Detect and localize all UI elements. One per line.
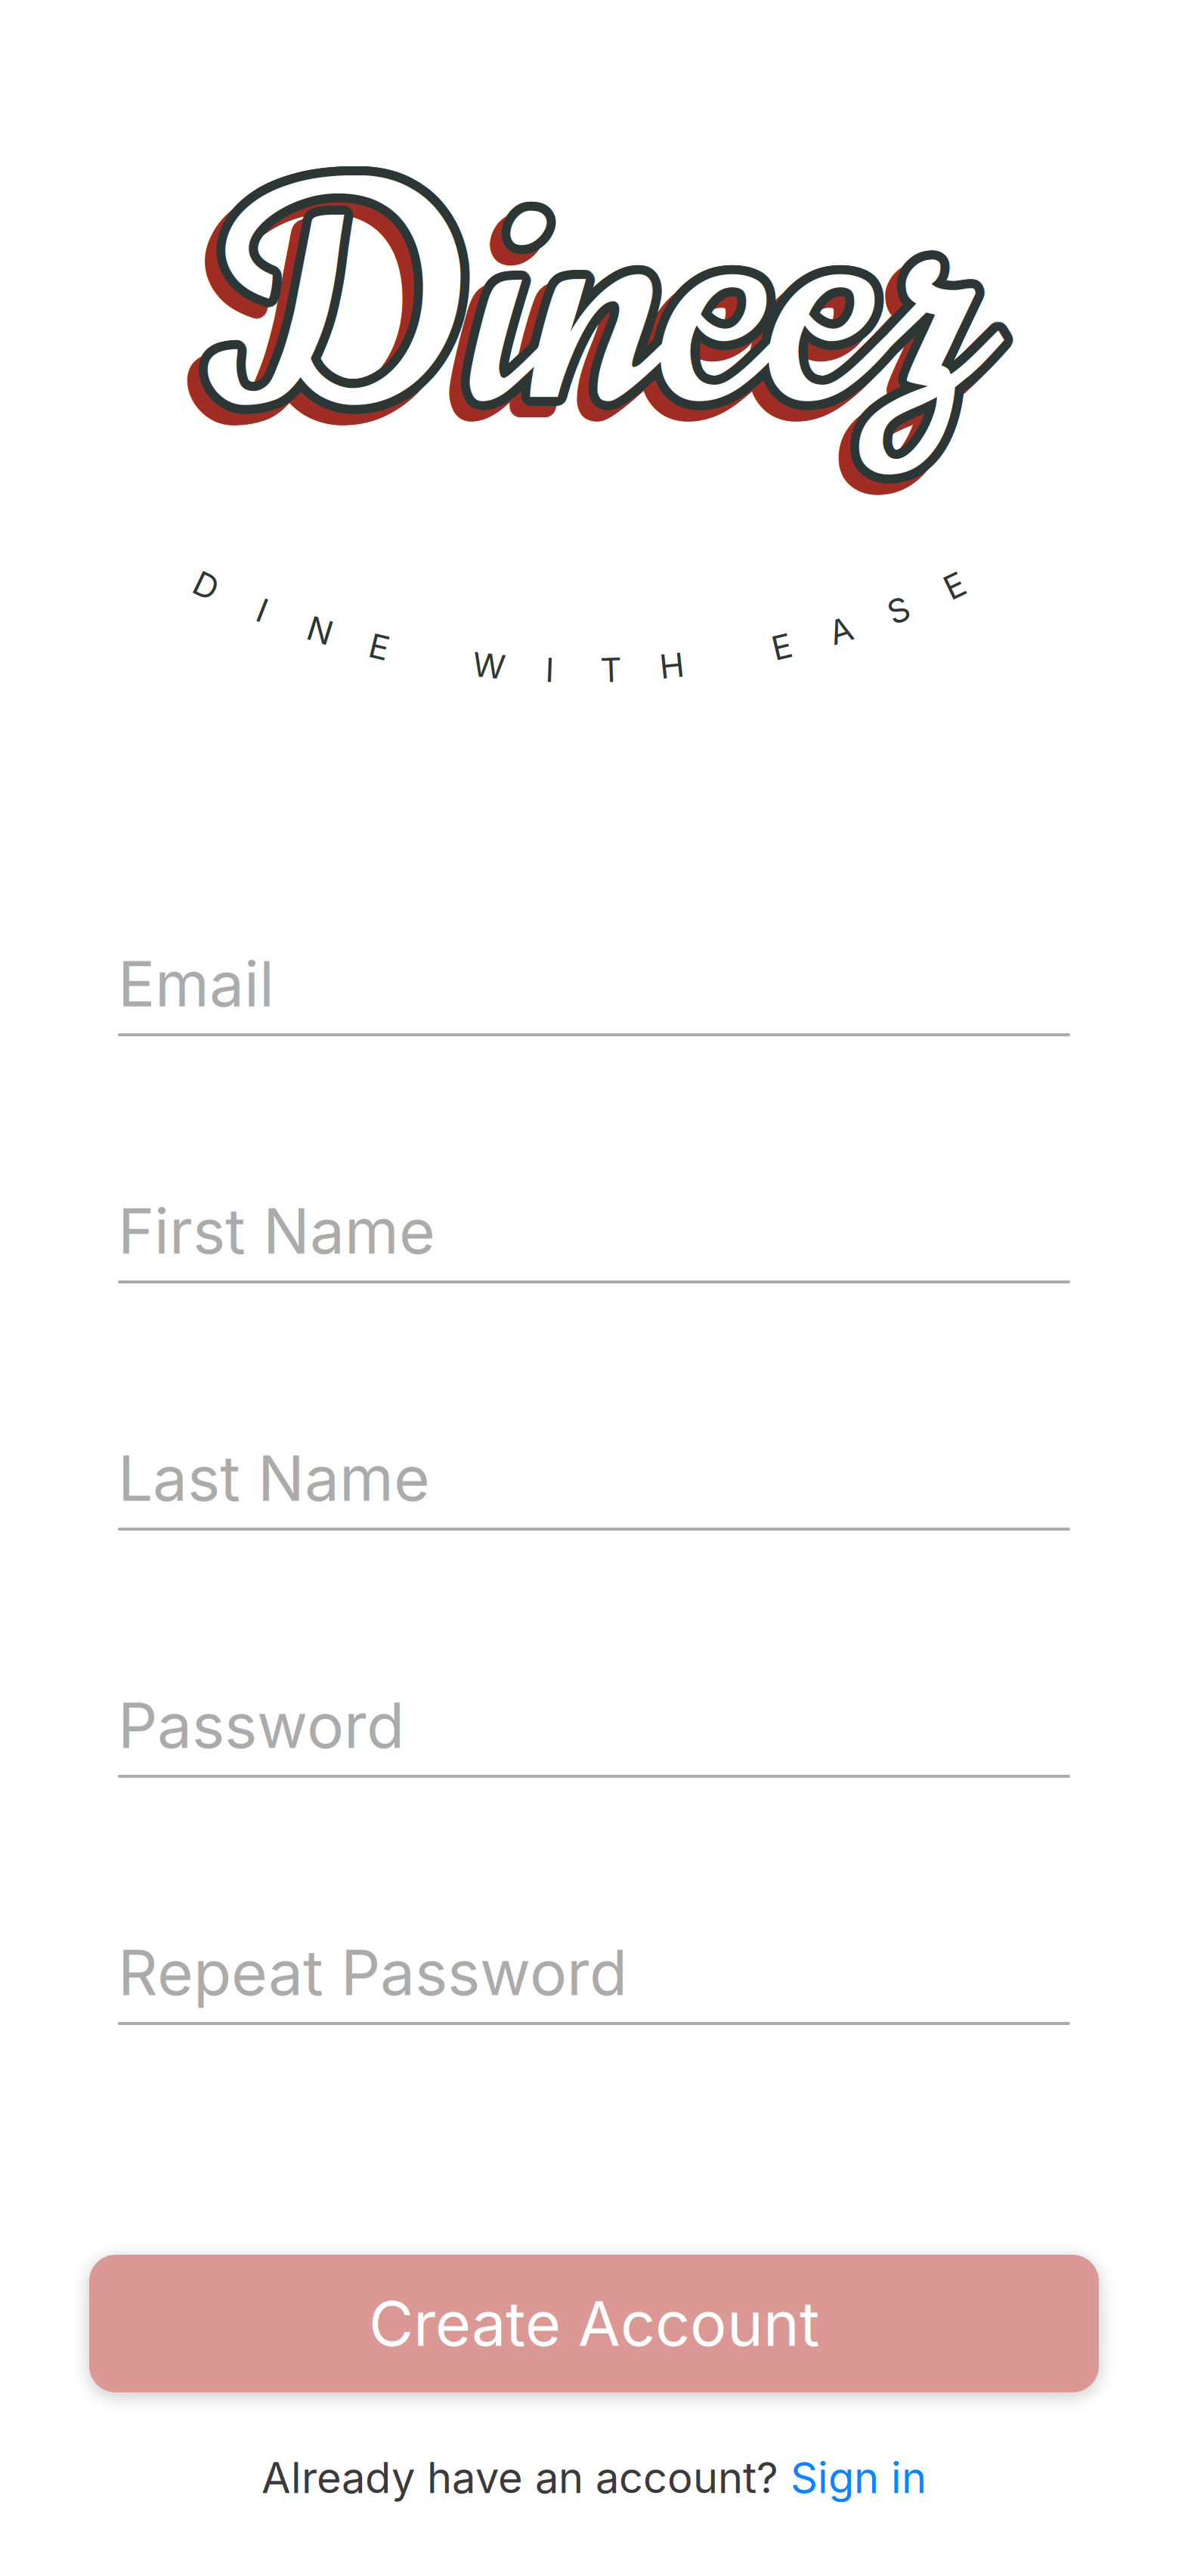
staticText: Dineez: [199, 106, 963, 527]
button[interactable]: Create Account: [89, 2255, 1099, 2392]
staticText: Dineez: [209, 95, 974, 516]
staticText: Dineez: [201, 104, 966, 525]
staticText: Dineez: [204, 103, 969, 523]
staticText: Dineez: [207, 109, 972, 529]
staticText: Dineez: [201, 101, 966, 522]
staticText: Dineez: [198, 103, 962, 523]
staticText: Dineez: [203, 99, 968, 520]
staticText: A: [829, 610, 852, 651]
staticText: Dineez: [224, 91, 989, 512]
staticText: W: [472, 646, 505, 686]
staticText: Dineez: [212, 99, 977, 519]
button[interactable]: Last Name: [118, 1441, 1070, 1531]
staticText: Dineez: [204, 103, 969, 523]
staticText: Dineez: [212, 106, 977, 527]
staticText: Dineez: [204, 103, 969, 523]
staticText: Dineez: [208, 98, 973, 518]
staticText: Dineez: [201, 101, 966, 521]
staticText: Dineez: [200, 98, 965, 518]
staticText: Dineez: [197, 109, 962, 529]
staticText: Dineez: [204, 103, 969, 523]
staticText: E: [772, 627, 792, 667]
staticText: Dineez: [211, 109, 976, 529]
staticText: Dineez: [203, 106, 968, 526]
staticText: Dineez: [207, 111, 971, 532]
staticText: Dineez: [203, 109, 968, 529]
staticText: Dineez: [201, 103, 965, 524]
staticText: Dineez: [204, 103, 969, 523]
staticText: Dineez: [204, 103, 969, 523]
staticText: Dineez: [203, 96, 968, 517]
staticText: Dineez: [204, 103, 969, 523]
staticText: Dineez: [204, 103, 969, 523]
staticText: Dineez: [204, 94, 969, 514]
staticText: D: [194, 566, 218, 606]
staticText: Dineez: [210, 84, 975, 505]
staticText: H: [660, 646, 685, 686]
staticText: Dineez: [213, 83, 978, 503]
staticText: Dineez: [204, 103, 969, 523]
staticText: Dineez: [207, 95, 972, 516]
staticText: Dineez: [217, 83, 982, 503]
staticText: Dineez: [202, 100, 967, 520]
staticText: Dineez: [195, 102, 960, 522]
staticText: S: [888, 590, 909, 630]
staticText: Dineez: [196, 99, 961, 519]
staticText: Dineez: [201, 97, 966, 517]
staticText: Dineez: [204, 103, 969, 523]
staticText: Dineez: [206, 100, 971, 520]
staticText: Dineez: [207, 104, 972, 525]
staticText: Dineez: [207, 93, 971, 514]
staticText: Dineez: [204, 103, 969, 523]
staticText: Dineez: [206, 91, 971, 512]
staticText: Dineez: [209, 99, 974, 520]
staticText: Dineez: [208, 97, 973, 517]
staticText: T: [600, 650, 622, 690]
staticText: Dineez: [204, 103, 969, 523]
staticText: First Name: [118, 1194, 435, 1268]
staticText: Dineez: [199, 95, 964, 516]
staticText: I: [258, 590, 267, 630]
button[interactable]: Repeat Password: [118, 1935, 1070, 2025]
staticText: Dineez: [221, 84, 986, 505]
staticText: Dineez: [207, 87, 972, 508]
button[interactable]: Email: [118, 946, 1070, 1036]
staticText: Dineez: [205, 99, 970, 520]
staticText: Dineez: [210, 98, 975, 519]
staticText: Dineez: [210, 105, 975, 525]
button[interactable]: First Name: [118, 1194, 1070, 1283]
staticText: Dineez: [199, 110, 964, 531]
staticText: Dineez: [207, 89, 971, 510]
staticText: Dineez: [204, 103, 969, 523]
staticText: Dineez: [204, 103, 969, 523]
staticText: Dineez: [197, 97, 962, 517]
button[interactable]: Password: [118, 1688, 1070, 1778]
staticText: Dineez: [207, 97, 971, 517]
staticText: Dineez: [207, 102, 972, 523]
staticText: Dineez: [211, 83, 976, 504]
staticText: Dineez: [211, 100, 976, 520]
staticText: Dineez: [202, 111, 966, 532]
staticText: Dineez: [204, 103, 969, 523]
staticText: Dineez: [198, 101, 963, 521]
staticText: Dineez: [200, 108, 965, 528]
staticText: Last Name: [118, 1441, 430, 1516]
staticText: Dineez: [210, 101, 975, 521]
staticText: Dineez: [224, 87, 988, 508]
staticText: Dineez: [204, 112, 969, 532]
staticText: Dineez: [219, 83, 984, 504]
staticText: Sign in: [790, 2452, 927, 2503]
staticText: E: [369, 627, 389, 667]
staticText: N: [308, 610, 333, 651]
staticText: Dineez: [210, 103, 975, 523]
staticText: Dineez: [213, 101, 978, 522]
staticText: Dineez: [222, 86, 987, 506]
staticText: Dineez: [204, 103, 969, 523]
staticText: Dineez: [219, 100, 984, 520]
staticText: Dineez: [217, 100, 982, 521]
staticText: Dineez: [206, 106, 971, 526]
staticText: Password: [118, 1688, 404, 1763]
button[interactable]: Sign in: [790, 2452, 927, 2503]
staticText: Already have an account?: [261, 2452, 790, 2503]
staticText: Dineez: [204, 106, 969, 527]
